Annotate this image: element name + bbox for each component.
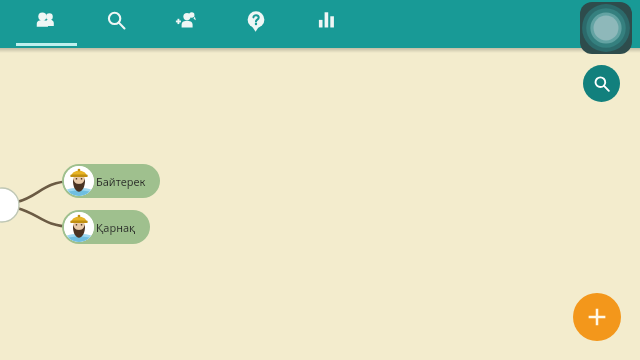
staticText: Қарнақ: [96, 220, 136, 235]
button[interactable]: Байтерек: [62, 164, 160, 198]
button[interactable]: Search: [81, 0, 151, 48]
button[interactable]: Search: [583, 65, 620, 102]
staticText: Байтерек: [96, 174, 146, 189]
button[interactable]: Person avatar: [64, 212, 94, 242]
button[interactable]: Profile: [580, 2, 632, 54]
button[interactable]: Person avatar: [64, 166, 94, 196]
button[interactable]: Қарнақ: [62, 210, 150, 244]
button[interactable]: Add person: [151, 0, 221, 48]
button[interactable]: Statistics: [291, 0, 361, 48]
button[interactable]: Family: [11, 0, 81, 48]
button[interactable]: Help: [221, 0, 291, 48]
button[interactable]: Add: [573, 293, 621, 341]
